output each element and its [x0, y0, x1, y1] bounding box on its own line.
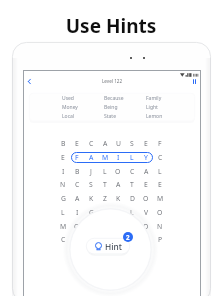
button[interactable]: N — [153, 219, 167, 233]
button[interactable]: T — [125, 177, 139, 191]
button[interactable]: Hint — [86, 238, 130, 255]
button[interactable]: A — [139, 164, 153, 178]
button[interactable]: L — [125, 205, 139, 219]
button[interactable]: A — [111, 177, 125, 191]
button[interactable]: F — [70, 150, 84, 164]
button[interactable]: A — [98, 136, 112, 150]
button[interactable]: I — [70, 205, 84, 219]
button[interactable]: P — [153, 232, 167, 246]
button[interactable]: E — [139, 136, 153, 150]
staticText: C — [130, 167, 135, 176]
staticText: L — [61, 208, 65, 217]
button[interactable]: N — [56, 177, 70, 191]
staticText: H — [102, 208, 108, 217]
staticText: E — [144, 139, 148, 148]
button[interactable]: U — [111, 136, 125, 150]
staticText: Money — [62, 104, 78, 111]
button[interactable]: R — [125, 232, 139, 246]
button[interactable]: L — [125, 150, 139, 164]
button[interactable]: Z — [98, 191, 112, 205]
button[interactable]: C — [125, 164, 139, 178]
staticText: Being — [104, 104, 118, 111]
button[interactable]: G — [84, 205, 98, 219]
button[interactable]: T — [98, 177, 112, 191]
button[interactable]: C — [70, 177, 84, 191]
staticText: Light — [146, 104, 158, 111]
staticText: V — [144, 208, 149, 217]
staticText: Hint — [105, 241, 122, 252]
button[interactable]: L — [98, 164, 112, 178]
button[interactable]: D — [125, 191, 139, 205]
staticText: T — [130, 180, 134, 189]
button[interactable]: L — [56, 205, 70, 219]
button[interactable]: G — [56, 191, 70, 205]
button[interactable]: M — [98, 150, 112, 164]
staticText: Y — [144, 153, 148, 162]
staticText: A — [75, 194, 80, 203]
button[interactable]: S — [125, 136, 139, 150]
button[interactable]: Pause — [187, 74, 201, 88]
button[interactable]: M — [153, 191, 167, 205]
staticText: P — [158, 235, 163, 244]
button[interactable]: V — [139, 205, 153, 219]
button[interactable]: Back — [22, 74, 36, 88]
button[interactable]: B — [56, 136, 70, 150]
staticText: Use Hints — [0, 13, 222, 39]
staticText: F — [75, 153, 79, 162]
button[interactable]: O — [111, 164, 125, 178]
staticText: I — [76, 208, 79, 217]
staticText: D — [130, 194, 135, 203]
button[interactable]: O — [153, 205, 167, 219]
button[interactable]: I — [56, 164, 70, 178]
button[interactable]: K — [84, 191, 98, 205]
button[interactable]: K — [111, 191, 125, 205]
button[interactable]: E — [139, 177, 153, 191]
staticText: L — [103, 167, 107, 176]
staticText: C — [89, 139, 94, 148]
button[interactable]: M — [56, 219, 70, 233]
button[interactable]: I — [111, 150, 125, 164]
button[interactable]: O — [70, 219, 84, 233]
staticText: State — [104, 113, 116, 120]
button[interactable]: Used — [29, 93, 195, 122]
button[interactable]: C — [153, 150, 167, 164]
staticText: O — [157, 208, 163, 217]
button[interactable]: E — [56, 150, 70, 164]
button[interactable]: A — [84, 150, 98, 164]
staticText: O — [143, 194, 149, 203]
staticText: O — [115, 167, 121, 176]
staticText: E — [61, 153, 65, 162]
button[interactable]: U — [70, 232, 84, 246]
staticText: Family — [146, 95, 162, 102]
staticText: L — [130, 153, 134, 162]
button[interactable]: J — [84, 164, 98, 178]
button[interactable]: A — [70, 191, 84, 205]
button[interactable]: Y — [125, 219, 139, 233]
button[interactable]: L — [153, 164, 167, 178]
button[interactable]: Y — [139, 150, 153, 164]
button[interactable]: E — [70, 136, 84, 150]
button[interactable]: E — [153, 177, 167, 191]
button[interactable]: S — [84, 177, 98, 191]
staticText: E — [144, 180, 148, 189]
button[interactable]: S — [139, 232, 153, 246]
button[interactable]: H — [98, 205, 112, 219]
button[interactable]: C — [84, 136, 98, 150]
button[interactable]: T — [111, 205, 125, 219]
button[interactable]: O — [139, 191, 153, 205]
staticText: L — [130, 208, 134, 217]
button[interactable]: E — [111, 232, 125, 246]
button[interactable]: F — [153, 136, 167, 150]
button[interactable]: C — [56, 232, 70, 246]
button[interactable]: O — [139, 219, 153, 233]
button[interactable]: B — [70, 164, 84, 178]
button[interactable]: M — [84, 232, 98, 246]
staticText: L — [158, 167, 162, 176]
button[interactable]: B — [98, 232, 112, 246]
